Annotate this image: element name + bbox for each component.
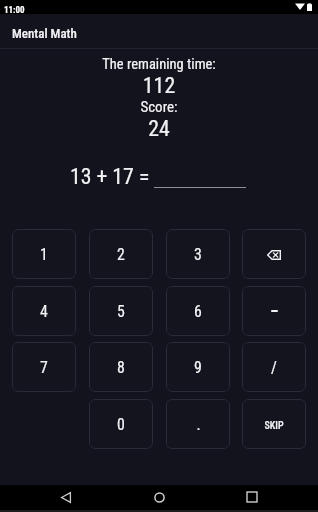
button[interactable]: 3 [166,229,230,279]
button[interactable]: 0 [89,399,153,449]
button[interactable]: Recent apps [242,487,262,507]
staticText: Score: [0,98,318,120]
button[interactable]: 2 [89,229,153,279]
staticText: SKIP [264,420,284,432]
button[interactable]: Divide [242,342,306,392]
staticText: Mental Math [12,26,77,41]
button[interactable]: 7 [12,342,76,392]
button[interactable]: 8 [89,342,153,392]
button[interactable]: 9 [166,342,230,392]
staticText: 2 [117,245,125,264]
staticText: 8 [117,358,125,377]
button[interactable]: Back [56,487,76,507]
staticText: 0 [117,415,125,434]
staticText: 9 [194,358,202,377]
button[interactable]: Home [149,487,169,507]
staticText: The remaining time: [0,56,318,77]
button[interactable]: 6 [166,286,230,336]
button[interactable]: Decimal point [166,399,230,449]
staticText: 6 [194,302,202,321]
button[interactable]: Backspace [242,229,306,279]
button[interactable]: Minus [242,286,306,336]
staticText: 11:00 [4,5,25,16]
staticText: . [196,415,201,434]
button[interactable]: 1 [12,229,76,279]
staticText: / [271,358,277,377]
button[interactable]: SKIP [242,399,306,449]
staticText: 1 [40,245,48,264]
button[interactable]: 4 [12,286,76,336]
staticText: 13 + 17 = [70,164,150,190]
staticText: 24 [0,116,318,148]
staticText: 4 [40,302,48,321]
button[interactable]: 5 [89,286,153,336]
staticText: 7 [40,358,48,377]
staticText: 112 [0,73,318,105]
button[interactable]: Mental Math [0,14,318,49]
staticText: 5 [117,302,125,321]
staticText: 3 [194,245,202,264]
